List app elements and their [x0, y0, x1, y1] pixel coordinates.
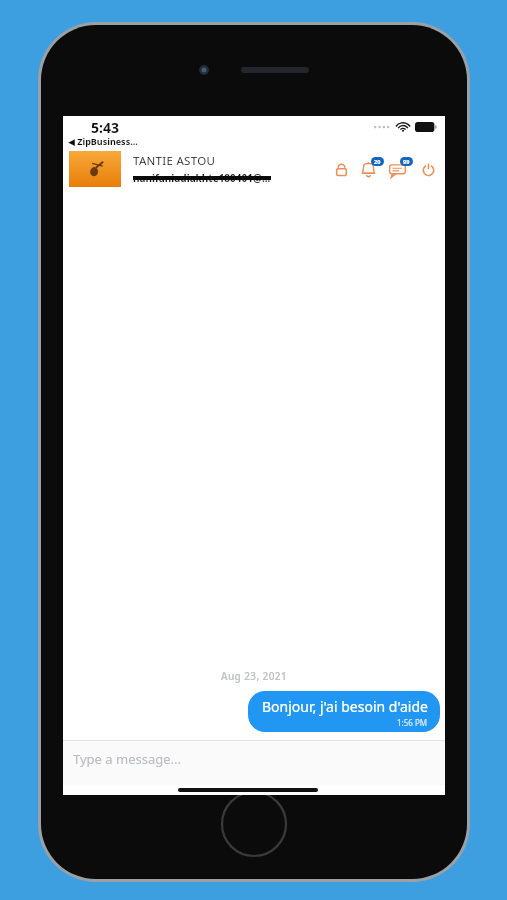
staticText: nanifaniadiakhte180401@...	[133, 171, 271, 185]
staticText: 20	[374, 158, 381, 165]
staticText: 99	[403, 158, 410, 165]
staticText: Type a message...	[73, 750, 181, 768]
button[interactable]: Bonjour, j'ai besoin d'aide	[248, 691, 440, 732]
button[interactable]: Notifications, 20 new	[357, 156, 383, 182]
button[interactable]: Contact avatar	[69, 151, 121, 187]
staticText: Aug 23, 2021	[63, 669, 445, 683]
staticText: 5:43	[91, 118, 119, 137]
button[interactable]: Type a message...	[63, 741, 445, 785]
staticText: ◀ ZipBusiness...	[68, 135, 138, 147]
staticText: Bonjour, j'ai besoin d'aide	[262, 697, 428, 716]
button[interactable]: Messages, 99 new	[386, 156, 412, 182]
button[interactable]: Power / Log out	[416, 157, 440, 181]
button[interactable]: Lock conversation	[329, 157, 353, 181]
staticText: TANTIE ASTOU	[133, 153, 216, 169]
staticText: 1:56 PM	[397, 717, 428, 728]
